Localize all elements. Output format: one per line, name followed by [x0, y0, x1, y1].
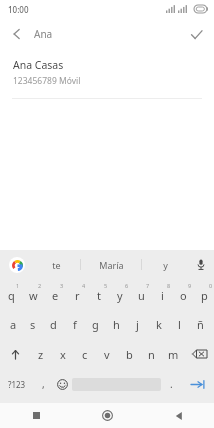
staticText: 10:00 [8, 4, 29, 15]
staticText: m [168, 347, 179, 362]
button[interactable]: q [0, 279, 22, 309]
button[interactable]: ?123 [0, 369, 34, 399]
staticText: q [8, 288, 15, 303]
button[interactable]: Home [72, 403, 143, 428]
staticText: 4 [82, 282, 86, 289]
staticText: te [52, 259, 61, 271]
staticText: o [180, 288, 187, 303]
button[interactable]: Backspace [184, 339, 214, 369]
button[interactable]: r [66, 279, 88, 309]
button[interactable]: m [162, 339, 184, 369]
staticText: v [104, 347, 110, 362]
staticText: z [38, 347, 44, 362]
staticText: 7 [146, 282, 150, 289]
button[interactable]: . [161, 369, 181, 399]
staticText: y [163, 259, 168, 271]
staticText: Ana [34, 27, 53, 41]
button[interactable]: v [96, 339, 118, 369]
button[interactable]: i [151, 279, 172, 309]
staticText: i [161, 288, 164, 303]
button[interactable]: z [30, 339, 52, 369]
staticText: b [126, 347, 133, 362]
button[interactable]: Shift [0, 339, 30, 369]
button[interactable]: t [88, 279, 109, 309]
staticText: k [156, 317, 162, 332]
staticText: 5 [104, 282, 108, 289]
button[interactable]: María [81, 250, 141, 279]
button[interactable]: Emoji [52, 369, 72, 399]
staticText: Ana Casas [13, 58, 64, 72]
button[interactable]: p [193, 279, 214, 309]
staticText: 6 [125, 282, 129, 289]
button[interactable]: Ana Casas [0, 50, 214, 99]
button[interactable]: f [64, 309, 85, 339]
button[interactable]: n [140, 339, 162, 369]
staticText: y [117, 288, 123, 303]
staticText: l [178, 317, 181, 332]
staticText: p [201, 288, 208, 303]
button[interactable]: y [109, 279, 130, 309]
button[interactable]: Back [0, 18, 34, 50]
staticText: c [82, 347, 88, 362]
button[interactable]: x [52, 339, 74, 369]
staticText: 3 [60, 282, 64, 289]
staticText: 8 [167, 282, 171, 289]
staticText: 2 [38, 282, 42, 289]
button[interactable]: g [85, 309, 106, 339]
button[interactable]: s [23, 309, 43, 339]
button[interactable]: w [22, 279, 44, 309]
button[interactable]: o [172, 279, 193, 309]
button[interactable]: y [142, 250, 188, 279]
staticText: h [113, 317, 120, 332]
staticText: u [138, 288, 145, 303]
button[interactable]: , [34, 369, 52, 399]
button[interactable]: c [74, 339, 96, 369]
button[interactable]: Voice input [188, 250, 214, 279]
staticText: María [99, 259, 124, 271]
staticText: . [170, 377, 173, 391]
button[interactable]: l [169, 309, 190, 339]
staticText: s [30, 317, 36, 332]
staticText: ?123 [8, 379, 26, 390]
staticText: t [97, 288, 101, 303]
staticText: j [136, 317, 139, 332]
staticText: g [92, 317, 99, 332]
staticText: 1 [16, 282, 20, 289]
staticText: w [29, 288, 38, 303]
staticText: d [50, 317, 57, 332]
button[interactable]: j [127, 309, 148, 339]
button[interactable]: k [148, 309, 169, 339]
button[interactable]: te [33, 250, 80, 279]
button[interactable]: Google [0, 250, 33, 279]
staticText: a [10, 317, 17, 332]
staticText: ñ [197, 317, 204, 332]
staticText: r [75, 288, 80, 303]
button[interactable]: Done [178, 18, 214, 50]
button[interactable]: d [43, 309, 64, 339]
staticText: 9 [188, 282, 192, 289]
button[interactable]: h [106, 309, 127, 339]
staticText: , [42, 377, 45, 391]
button[interactable]: Enter [181, 369, 214, 399]
button[interactable]: Back [143, 403, 214, 428]
staticText: f [73, 317, 77, 332]
staticText: n [148, 347, 155, 362]
button[interactable]: ñ [190, 309, 211, 339]
staticText: e [52, 288, 59, 303]
button[interactable]: a [3, 309, 23, 339]
staticText: x [60, 347, 66, 362]
button[interactable]: u [130, 279, 151, 309]
button[interactable] [72, 369, 161, 399]
button[interactable]: e [44, 279, 66, 309]
staticText: 123456789 Móvil [13, 75, 81, 87]
button[interactable]: Recent apps [0, 403, 72, 428]
button[interactable]: b [118, 339, 140, 369]
staticText: 0 [209, 282, 213, 289]
